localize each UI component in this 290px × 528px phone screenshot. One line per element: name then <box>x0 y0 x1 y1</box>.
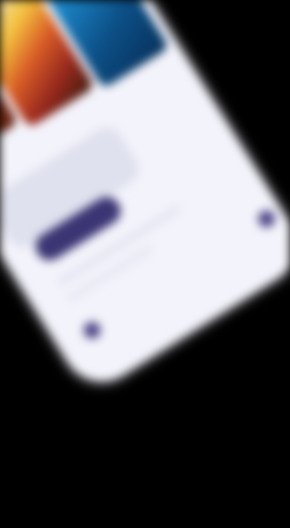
button[interactable]: Home <box>80 318 104 342</box>
button[interactable] <box>0 4 19 165</box>
button[interactable]: Profile <box>255 207 278 231</box>
button[interactable] <box>0 121 145 254</box>
button[interactable] <box>30 192 126 266</box>
button[interactable] <box>0 0 95 128</box>
button[interactable] <box>21 0 170 89</box>
